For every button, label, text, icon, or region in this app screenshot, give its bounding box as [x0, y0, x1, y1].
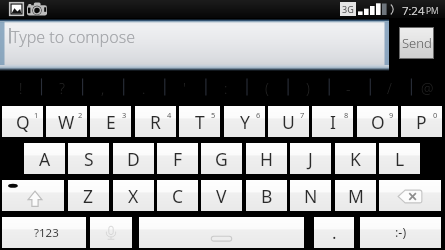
button[interactable]: -: [328, 71, 369, 105]
button[interactable]: ,: [82, 71, 123, 105]
staticText: 3G: [342, 3, 354, 15]
staticText: (: [265, 79, 269, 98]
button[interactable]: Q: [2, 106, 43, 137]
button[interactable]: I: [312, 106, 353, 137]
button[interactable]: B: [246, 180, 287, 211]
staticText: 6: [256, 110, 261, 120]
button[interactable]: C: [157, 180, 198, 211]
button[interactable]: J: [290, 143, 331, 174]
staticText: R: [150, 110, 161, 134]
button[interactable]: M: [335, 180, 376, 211]
staticText: K: [350, 147, 361, 171]
staticText: 4: [167, 110, 172, 120]
button[interactable]: ): [287, 71, 328, 105]
button[interactable]: :: [205, 71, 246, 105]
staticText: ?: [59, 79, 65, 98]
staticText: 1: [34, 110, 39, 120]
staticText: I: [330, 110, 336, 134]
button[interactable]: .: [314, 217, 354, 248]
button[interactable]: E: [90, 106, 131, 137]
staticText: G: [215, 147, 228, 171]
staticText: V: [216, 184, 227, 208]
button[interactable]: X: [113, 180, 154, 211]
button[interactable]: Backspace: [379, 180, 441, 211]
button[interactable]: L: [379, 143, 420, 174]
staticText: L: [395, 147, 405, 171]
staticText: Z: [83, 184, 94, 208]
button[interactable]: Voice input: [90, 217, 132, 248]
staticText: ): [306, 79, 310, 98]
button[interactable]: V: [201, 180, 242, 211]
button[interactable]: S: [68, 143, 109, 174]
button[interactable]: H: [246, 143, 287, 174]
staticText: :: [224, 79, 228, 98]
staticText: C: [172, 184, 184, 208]
staticText: ?123: [34, 225, 59, 241]
button[interactable]: G: [201, 143, 242, 174]
staticText: P: [416, 110, 427, 134]
staticText: M: [348, 184, 364, 208]
button[interactable]: P: [401, 106, 442, 137]
button[interactable]: Y: [224, 106, 265, 137]
button[interactable]: ': [164, 71, 205, 105]
staticText: 2: [78, 110, 83, 120]
staticText: X: [128, 184, 139, 208]
staticText: @: [421, 79, 434, 98]
staticText: N: [304, 184, 318, 208]
staticText: O: [371, 110, 385, 134]
button[interactable]: @: [410, 71, 445, 105]
button[interactable]: N: [290, 180, 331, 211]
staticText: 5: [211, 110, 216, 120]
staticText: W: [58, 110, 75, 134]
button[interactable]: Shift: [2, 180, 64, 211]
button[interactable]: ?: [41, 71, 82, 105]
staticText: ,: [101, 79, 105, 98]
staticText: PM: [426, 5, 439, 17]
staticText: F: [173, 147, 183, 171]
staticText: B: [261, 184, 273, 208]
staticText: ': [183, 79, 186, 98]
staticText: D: [127, 147, 140, 171]
staticText: U: [282, 110, 295, 134]
staticText: 7: [300, 110, 305, 120]
staticText: E: [106, 110, 116, 134]
button[interactable]: Gallery: [9, 2, 24, 16]
button[interactable]: W: [46, 106, 87, 137]
staticText: Y: [240, 110, 250, 134]
button[interactable]: F: [157, 143, 198, 174]
staticText: :-): [395, 224, 407, 241]
staticText: .: [332, 221, 337, 244]
staticText: .: [142, 79, 146, 98]
staticText: 0: [433, 110, 438, 120]
staticText: H: [260, 147, 273, 171]
staticText: !: [19, 79, 23, 98]
button[interactable]: Camera: [27, 2, 47, 16]
button[interactable]: /: [369, 71, 410, 105]
button[interactable]: Type to compose: [0, 19, 389, 71]
staticText: 8: [344, 110, 349, 120]
staticText: J: [308, 147, 313, 171]
button[interactable]: ?123: [2, 217, 86, 248]
staticText: 3: [122, 110, 127, 120]
staticText: 9: [389, 110, 394, 120]
button[interactable]: U: [268, 106, 309, 137]
button[interactable]: Space: [139, 217, 304, 248]
button[interactable]: Send: [400, 28, 433, 58]
staticText: Type to compose: [11, 26, 135, 48]
button[interactable]: A: [24, 143, 65, 174]
button[interactable]: .: [123, 71, 164, 105]
staticText: A: [39, 147, 51, 171]
staticText: Q: [16, 110, 30, 134]
button[interactable]: K: [335, 143, 376, 174]
button[interactable]: :-): [360, 217, 441, 248]
staticText: /: [387, 79, 392, 98]
staticText: S: [84, 147, 94, 171]
button[interactable]: R: [135, 106, 176, 137]
staticText: -: [346, 79, 351, 98]
button[interactable]: O: [357, 106, 398, 137]
button[interactable]: T: [179, 106, 220, 137]
button[interactable]: Z: [68, 180, 109, 211]
button[interactable]: D: [113, 143, 154, 174]
button[interactable]: (: [246, 71, 287, 105]
